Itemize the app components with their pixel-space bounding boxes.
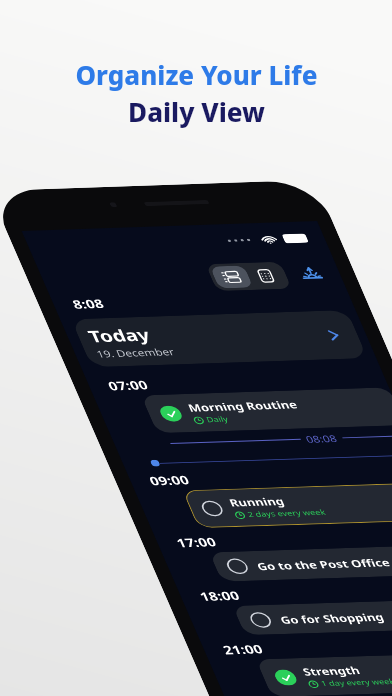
staticText: Go for Shopping: [278, 610, 386, 626]
button[interactable]: List view: [210, 265, 253, 289]
button[interactable]: Strength: [256, 652, 392, 696]
staticText: 09:00: [146, 472, 192, 489]
staticText: Daily View: [128, 94, 265, 129]
button[interactable]: Sunrise: [295, 265, 327, 284]
button[interactable]: Today: [71, 310, 368, 367]
staticText: 17:00: [173, 534, 219, 551]
staticText: 21:00: [220, 641, 265, 658]
button[interactable]: Go to the Post Office: [209, 544, 392, 582]
staticText: 1 day every week: [319, 676, 392, 689]
staticText: Daily: [204, 414, 230, 425]
staticText: Morning Routine: [185, 397, 300, 414]
button[interactable]: Calendar view: [244, 264, 288, 287]
staticText: 07:00: [105, 377, 150, 394]
button[interactable]: Morning Routine: [141, 387, 392, 433]
staticText: Running: [227, 494, 287, 509]
staticText: 2 days every week: [246, 507, 328, 520]
button[interactable]: Go for Shopping: [232, 598, 392, 635]
staticText: 8:08: [69, 295, 106, 312]
staticText: 18:00: [197, 587, 242, 604]
staticText: Today: [84, 324, 154, 347]
button[interactable]: Running: [182, 482, 392, 528]
staticText: 19. December: [94, 345, 176, 360]
staticText: 08:08: [303, 432, 340, 445]
staticText: Strength: [300, 663, 362, 678]
staticText: Go to the Post Office: [254, 555, 392, 573]
staticText: Organize Your Life: [75, 57, 318, 92]
